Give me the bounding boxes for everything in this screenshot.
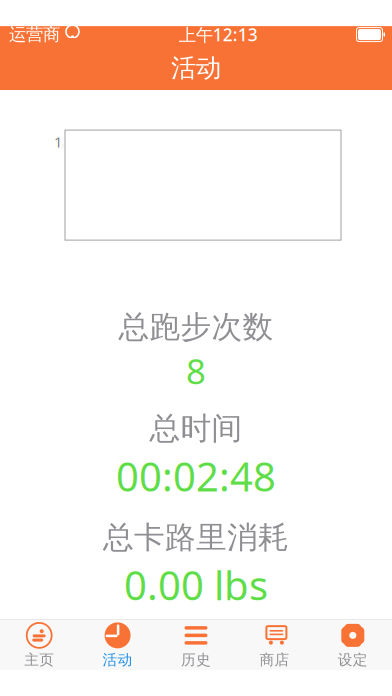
- staticText: 活动: [103, 651, 133, 669]
- staticText: 1: [54, 132, 62, 152]
- staticText: 总卡路里消耗: [103, 519, 289, 556]
- staticText: 总时间: [149, 410, 242, 447]
- staticText: 0.00 lbs: [124, 558, 268, 611]
- staticText: 00:02:48: [116, 449, 276, 503]
- button[interactable]: 设定: [314, 617, 392, 673]
- staticText: 8: [186, 348, 206, 394]
- staticText: 设定: [338, 651, 368, 669]
- staticText: 运营商: [9, 24, 60, 45]
- staticText: 上午12:13: [179, 23, 258, 46]
- button[interactable]: 主页: [0, 617, 78, 673]
- staticText: 主页: [24, 651, 54, 669]
- button[interactable]: 历史: [157, 617, 235, 673]
- button[interactable]: 商店: [235, 617, 314, 673]
- staticText: 历史: [181, 651, 211, 669]
- staticText: 总跑步次数: [118, 308, 273, 346]
- staticText: 活动: [171, 53, 221, 84]
- button[interactable]: 活动: [78, 617, 157, 673]
- staticText: 商店: [259, 651, 289, 669]
